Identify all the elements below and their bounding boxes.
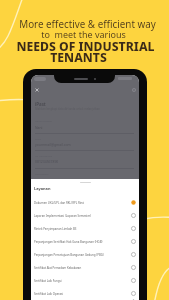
button[interactable]: Sertifikat Laik Fungsi xyxy=(31,274,139,287)
staticText: to meet the various xyxy=(0,28,168,40)
staticText: Dokumen UKL/UPL dan RKL/RPL Rinci xyxy=(34,201,85,205)
staticText: Sertifikat Laik Fungsi xyxy=(34,279,62,283)
button[interactable]: Close xyxy=(35,88,39,92)
staticText: More effective & efficient way xyxy=(3,17,169,30)
staticText: NEEDS OF INDUSTRIAL xyxy=(1,38,169,55)
button[interactable]: Dokumen UKL/UPL dan RKL/RPL Rinci xyxy=(31,196,139,209)
staticText: Nani xyxy=(35,125,43,130)
button[interactable]: Perpanjangan Sertifikat Hak Guna Banguna… xyxy=(31,235,139,248)
staticText: 081234567890 xyxy=(35,159,59,164)
button[interactable]: Perpanjangan Persetujuan Bangunan Gedung… xyxy=(31,248,139,261)
staticText: youremail@gmail.com xyxy=(35,142,71,147)
staticText: Rintek Penyimpanan Limbah B3 xyxy=(34,227,77,231)
staticText: Laporan Implementasi (Laporan Semester) xyxy=(34,214,92,218)
staticText: Perpanjangan Persetujuan Bangunan Gedung… xyxy=(34,253,104,257)
button[interactable]: Laporan Implementasi (Laporan Semester) xyxy=(31,209,139,222)
staticText: Perpanjangan Sertifikat Hak Guna Banguna… xyxy=(34,240,103,244)
button[interactable]: Sertifikat Alat Pemadam Kebakaran xyxy=(31,261,139,274)
staticText: Layanan xyxy=(34,186,51,191)
staticText: Sertifikat Alat Pemadam Kebakaran xyxy=(34,266,82,270)
button[interactable]: Sertifikat Laik Operasi xyxy=(31,287,139,300)
staticText: Sertifikat Laik Operasi xyxy=(34,292,64,296)
staticText: TENANTS xyxy=(0,49,163,66)
button[interactable]: Information xyxy=(132,88,136,92)
button[interactable]: Rintek Penyimpanan Limbah B3 xyxy=(31,222,139,235)
staticText: iPast xyxy=(35,101,46,107)
